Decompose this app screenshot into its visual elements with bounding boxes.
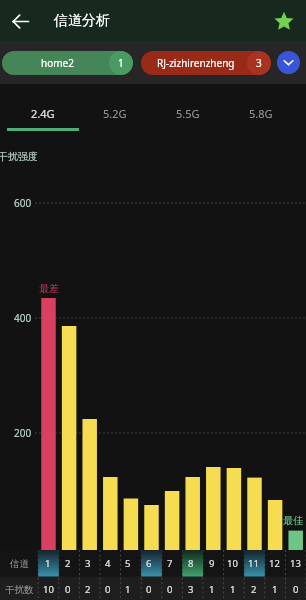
staticText: 12 [269, 557, 280, 570]
button[interactable]: 6 [138, 550, 159, 577]
staticText: 0 [105, 583, 111, 596]
staticText: 0 [167, 583, 173, 596]
button[interactable]: home2 [2, 51, 133, 75]
staticText: 干扰数 [5, 584, 34, 596]
button[interactable]: 2.4G [7, 84, 79, 130]
staticText: home2 [41, 56, 74, 70]
button[interactable]: 13 [285, 550, 306, 577]
staticText: 600 [14, 196, 32, 210]
staticText: 3 [188, 583, 194, 596]
staticText: 最差 [39, 282, 59, 295]
button[interactable]: RJ-zizhirenzheng [141, 51, 271, 75]
staticText: 2 [85, 583, 91, 596]
button[interactable]: 9 [201, 550, 222, 577]
button[interactable]: 2 [58, 550, 78, 577]
staticText: 1 [45, 557, 51, 570]
staticText: 1 [125, 583, 131, 596]
staticText: 5.2G [103, 106, 127, 121]
button[interactable]: 11 [243, 550, 264, 577]
button[interactable]: Expand network list [277, 51, 300, 74]
button[interactable]: 3 [78, 550, 98, 577]
button[interactable]: Back [0, 1, 40, 41]
staticText: 3 [85, 557, 91, 570]
staticText: 3 [256, 56, 262, 70]
button[interactable]: 5.8G [224, 84, 297, 130]
button[interactable]: 5.2G [79, 84, 151, 130]
staticText: 11 [248, 557, 259, 570]
staticText: 200 [14, 426, 32, 440]
staticText: 1 [118, 56, 124, 70]
staticText: 400 [14, 311, 32, 325]
staticText: RJ-zizhirenzheng [157, 56, 235, 70]
staticText: 1 [230, 583, 236, 596]
staticText: 5.5G [176, 106, 200, 121]
staticText: 6 [146, 557, 152, 570]
button[interactable]: 1 [38, 550, 58, 577]
staticText: 信道 [10, 558, 29, 570]
staticText: 2.4G [31, 106, 55, 121]
staticText: 干扰强度 [0, 150, 38, 163]
staticText: 5 [125, 557, 131, 570]
staticText: 信道分析 [54, 12, 110, 30]
staticText: 0 [65, 583, 71, 596]
button[interactable]: 10 [222, 550, 243, 577]
staticText: 13 [290, 557, 301, 570]
button[interactable]: 5 [118, 550, 138, 577]
staticText: 4 [105, 557, 111, 570]
button[interactable]: 12 [264, 550, 285, 577]
staticText: 10 [227, 557, 238, 570]
button[interactable]: 5.5G [151, 84, 224, 130]
staticText: 2 [251, 583, 257, 596]
staticText: 0 [293, 583, 299, 596]
staticText: 最佳 [283, 514, 303, 527]
button[interactable]: 4 [98, 550, 118, 577]
staticText: 0 [146, 583, 152, 596]
staticText: 1 [272, 583, 278, 596]
staticText: 5.8G [249, 106, 273, 121]
button[interactable]: Favorite [269, 6, 298, 35]
staticText: 2 [65, 557, 71, 570]
staticText: 1 [209, 583, 215, 596]
staticText: 7 [167, 557, 173, 570]
staticText: 10 [43, 583, 54, 596]
staticText: 9 [209, 557, 215, 570]
button[interactable]: 8 [180, 550, 201, 577]
button[interactable]: 7 [159, 550, 180, 577]
staticText: 8 [188, 557, 194, 570]
